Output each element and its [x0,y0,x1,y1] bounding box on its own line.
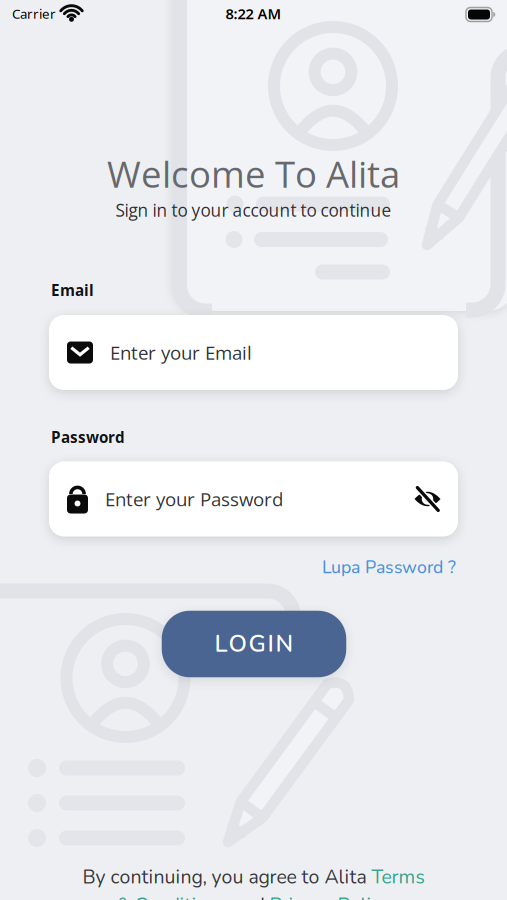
staticText: Welcome To Alita [107,149,400,198]
button[interactable]: & Conditions [116,892,227,900]
staticText: Privacy Policy [269,892,390,900]
button[interactable]: Terms [371,864,424,890]
staticText: Email [51,280,94,300]
staticText: Lupa Password ? [322,555,456,579]
button[interactable]: Privacy Policy [269,892,390,900]
button[interactable]: Lupa Password ? [322,555,456,579]
button[interactable]: Enter your Email [49,315,458,390]
staticText: By continuing, you agree to Alita [82,864,371,890]
button[interactable]: Show password [414,488,458,510]
button[interactable]: Enter your Password [49,461,458,536]
staticText: LOGIN [214,628,293,660]
button[interactable]: LOGIN [162,611,346,677]
staticText: and [227,892,269,900]
staticText: Carrier [12,5,56,22]
staticText: & Conditions [116,892,227,900]
staticText: Password [51,427,125,447]
staticText: Sign in to your account to continue [115,198,391,222]
staticText: Enter your Password [105,486,283,512]
staticText: 8:22 AM [225,4,281,23]
staticText: Terms [371,864,424,890]
staticText: Enter your Email [110,340,252,365]
